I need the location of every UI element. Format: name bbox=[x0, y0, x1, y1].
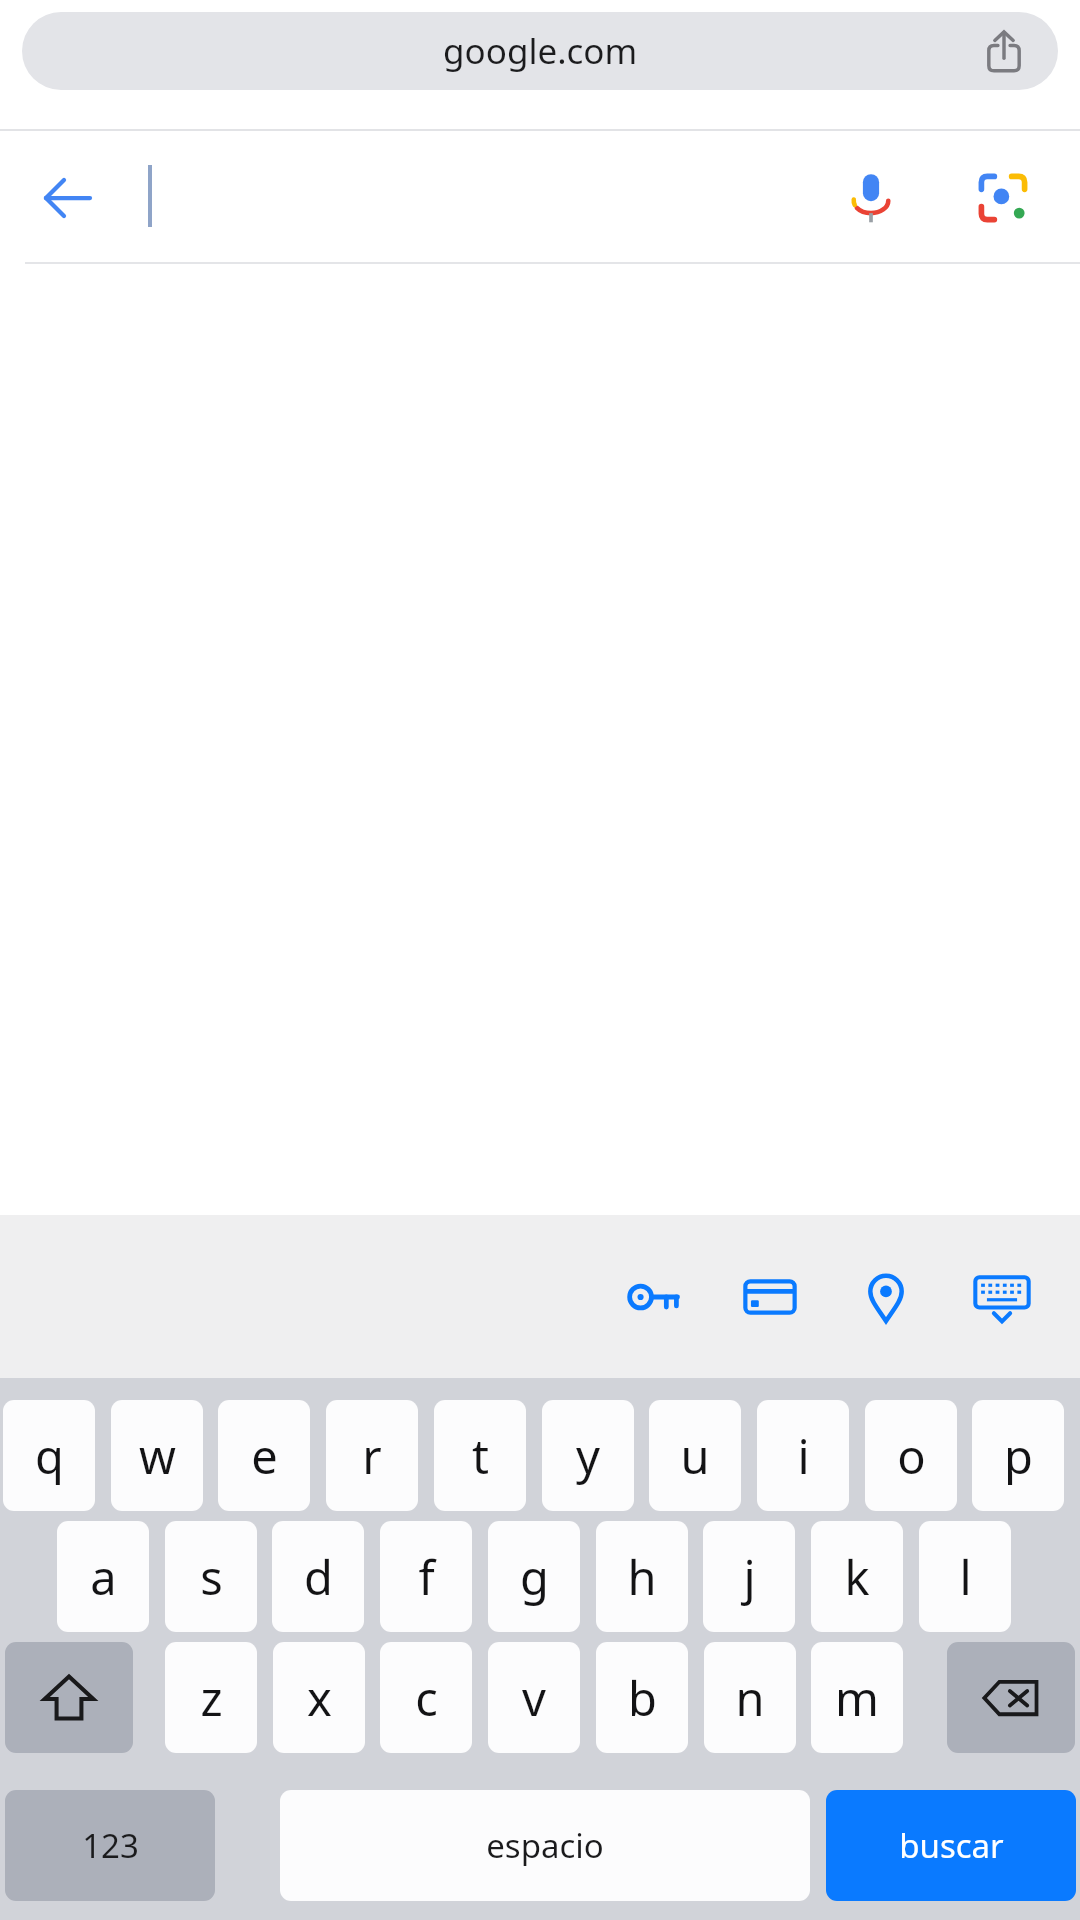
button[interactable]: espacio bbox=[280, 1790, 810, 1901]
staticText: v bbox=[522, 1666, 546, 1730]
staticText: w bbox=[139, 1424, 176, 1488]
button[interactable]: z bbox=[165, 1642, 257, 1753]
button[interactable]: d bbox=[272, 1521, 364, 1632]
button[interactable]: a bbox=[57, 1521, 149, 1632]
button[interactable]: b bbox=[596, 1642, 688, 1753]
button[interactable]: u bbox=[649, 1400, 741, 1511]
button[interactable]: x bbox=[273, 1642, 365, 1753]
staticText: a bbox=[90, 1545, 117, 1609]
button[interactable]: h bbox=[596, 1521, 688, 1632]
button[interactable]: Addresses bbox=[850, 1261, 922, 1333]
staticText: z bbox=[200, 1666, 223, 1730]
staticText: e bbox=[251, 1424, 278, 1488]
staticText: buscar bbox=[899, 1823, 1004, 1868]
button[interactable]: google.com bbox=[22, 12, 1058, 90]
button[interactable]: p bbox=[972, 1400, 1064, 1511]
staticText: u bbox=[680, 1424, 710, 1488]
button[interactable]: Passwords bbox=[618, 1261, 690, 1333]
staticText: o bbox=[897, 1424, 926, 1488]
staticText: g bbox=[520, 1545, 549, 1609]
button[interactable]: Voice search bbox=[826, 153, 916, 243]
staticText: r bbox=[362, 1424, 382, 1488]
button[interactable]: q bbox=[3, 1400, 95, 1511]
button[interactable]: Payment methods bbox=[734, 1261, 806, 1333]
staticText: t bbox=[472, 1424, 489, 1488]
button[interactable]: Google Lens bbox=[958, 153, 1048, 243]
staticText: h bbox=[627, 1545, 657, 1609]
button[interactable]: e bbox=[218, 1400, 310, 1511]
staticText: n bbox=[735, 1666, 765, 1730]
staticText: j bbox=[743, 1545, 756, 1609]
staticText: b bbox=[628, 1666, 657, 1730]
staticText: l bbox=[959, 1545, 972, 1609]
staticText: google.com bbox=[443, 27, 638, 75]
staticText: k bbox=[844, 1545, 870, 1609]
button[interactable]: w bbox=[111, 1400, 203, 1511]
button[interactable]: n bbox=[704, 1642, 796, 1753]
button[interactable]: Backspace bbox=[947, 1642, 1075, 1753]
staticText: q bbox=[35, 1424, 64, 1488]
staticText: s bbox=[200, 1545, 223, 1609]
button[interactable]: r bbox=[326, 1400, 418, 1511]
staticText: p bbox=[1004, 1424, 1033, 1488]
button[interactable]: s bbox=[165, 1521, 257, 1632]
button[interactable]: buscar bbox=[826, 1790, 1076, 1901]
staticText: m bbox=[835, 1666, 879, 1730]
button[interactable]: c bbox=[380, 1642, 472, 1753]
staticText: f bbox=[418, 1545, 435, 1609]
button[interactable]: Hide keyboard bbox=[966, 1261, 1038, 1333]
staticText: espacio bbox=[486, 1823, 604, 1868]
button[interactable]: i bbox=[757, 1400, 849, 1511]
staticText: x bbox=[307, 1666, 332, 1730]
button[interactable]: m bbox=[811, 1642, 903, 1753]
button[interactable]: g bbox=[488, 1521, 580, 1632]
staticText: i bbox=[797, 1424, 810, 1488]
button[interactable]: y bbox=[542, 1400, 634, 1511]
staticText: c bbox=[415, 1666, 438, 1730]
button[interactable]: o bbox=[865, 1400, 957, 1511]
button[interactable]: k bbox=[811, 1521, 903, 1632]
button[interactable]: Shift bbox=[5, 1642, 133, 1753]
staticText: d bbox=[304, 1545, 333, 1609]
staticText: 123 bbox=[82, 1823, 139, 1868]
button[interactable]: v bbox=[488, 1642, 580, 1753]
button[interactable]: l bbox=[919, 1521, 1011, 1632]
button[interactable]: Back bbox=[26, 156, 110, 240]
button[interactable]: j bbox=[703, 1521, 795, 1632]
button[interactable]: 123 bbox=[5, 1790, 215, 1901]
button[interactable]: t bbox=[434, 1400, 526, 1511]
button[interactable]: f bbox=[380, 1521, 472, 1632]
button[interactable]: Share bbox=[972, 19, 1036, 83]
staticText: y bbox=[576, 1424, 600, 1488]
